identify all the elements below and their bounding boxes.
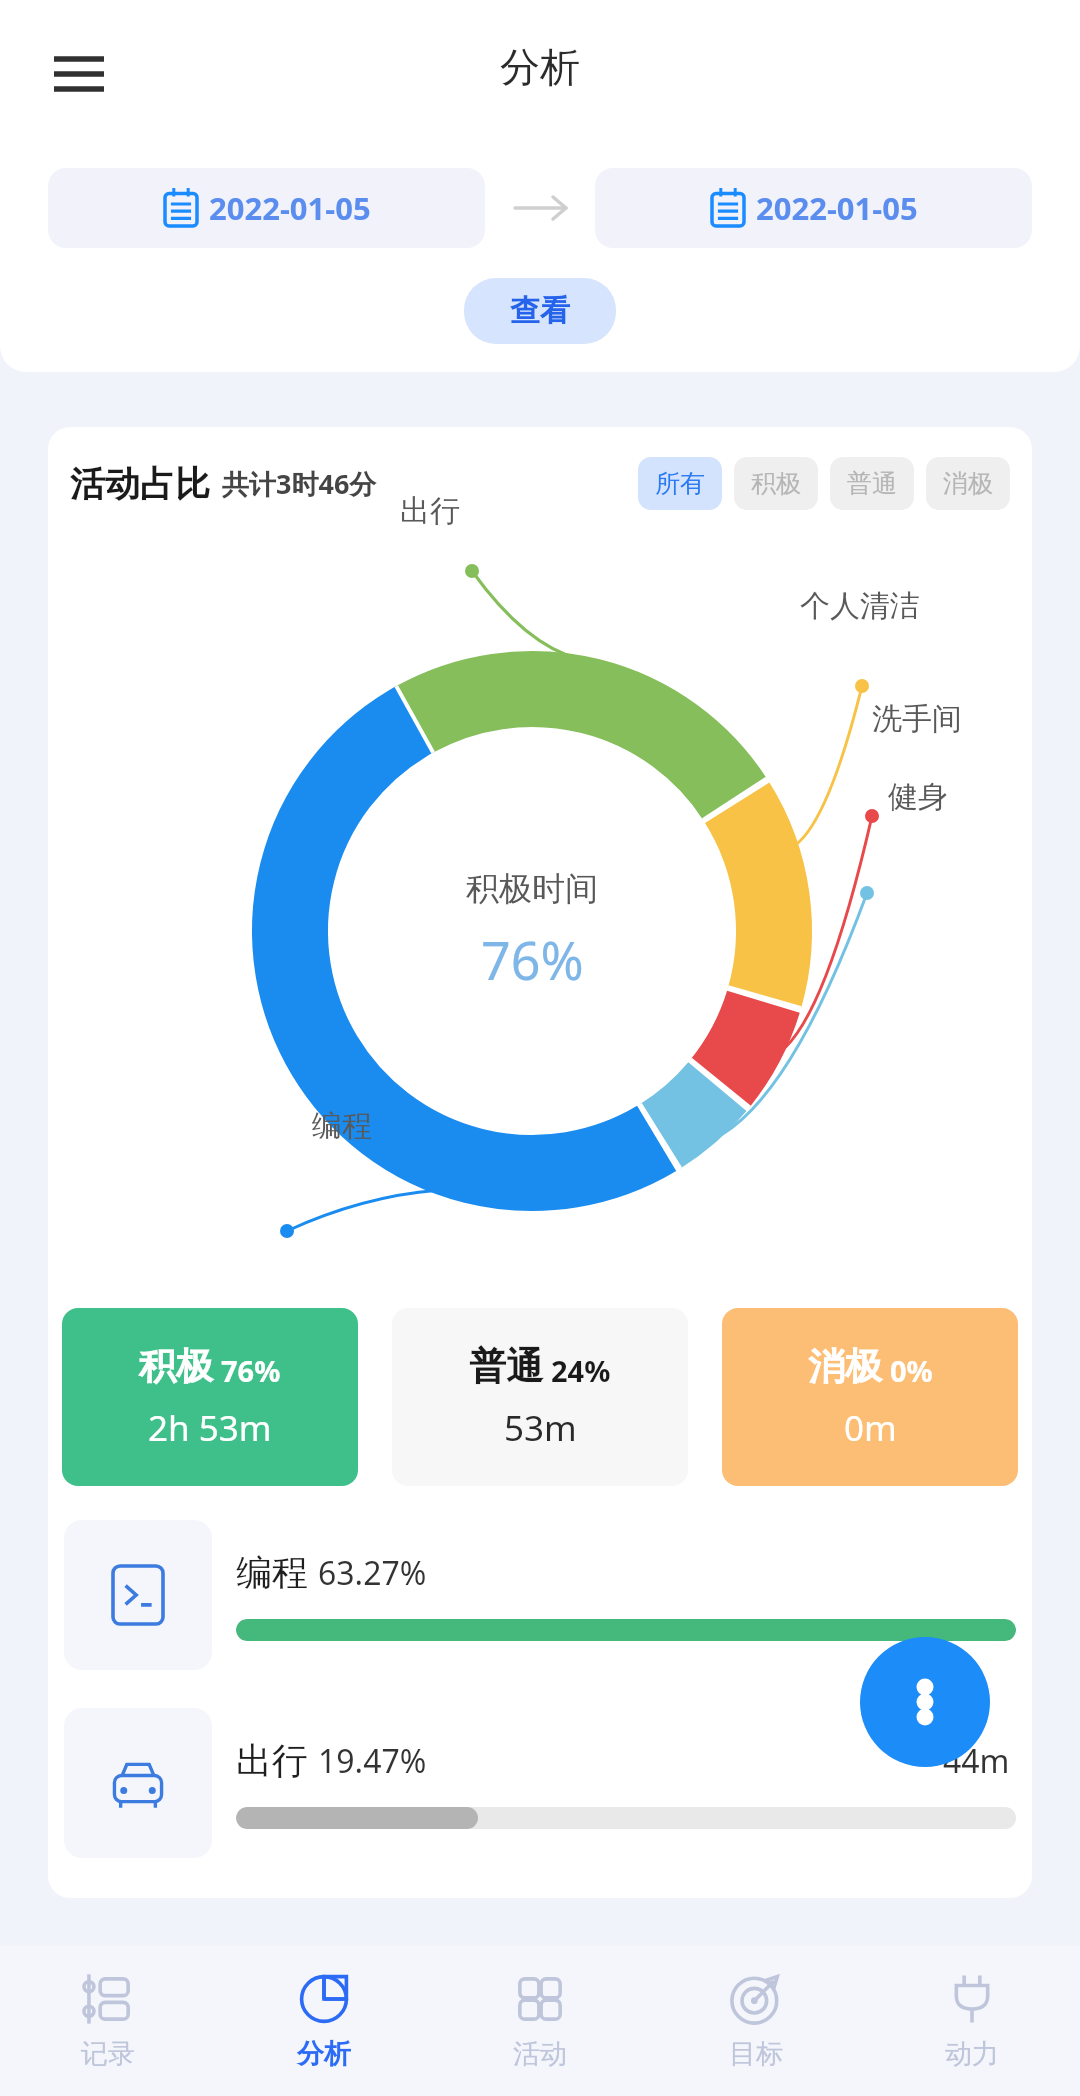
staticText: 出行	[400, 492, 460, 530]
staticText: 动力	[945, 2037, 999, 2071]
button[interactable]: 普通	[830, 457, 914, 510]
button[interactable]: More options	[860, 1637, 990, 1767]
button[interactable]: Menu	[40, 36, 118, 114]
button[interactable]: 目标	[648, 1946, 864, 2096]
staticText: 活动占比	[70, 462, 210, 506]
staticText: 查看	[510, 292, 570, 330]
staticText: 76%	[481, 924, 584, 995]
staticText: 记录	[81, 2037, 135, 2071]
staticText: 0m	[844, 1404, 897, 1452]
staticText: 洗手间	[872, 700, 962, 738]
button[interactable]: 积极	[734, 457, 818, 510]
button[interactable]: 分析	[216, 1946, 432, 2096]
staticText: 积极时间	[466, 868, 598, 910]
button[interactable]: 积极	[62, 1308, 358, 1486]
button[interactable]: 活动	[432, 1946, 648, 2096]
staticText: 0%	[890, 1351, 933, 1390]
staticText: 76%	[221, 1351, 281, 1390]
button[interactable]: 记录	[0, 1946, 216, 2096]
staticText: 消极	[808, 1343, 882, 1390]
staticText: 所有	[655, 468, 705, 499]
staticText: 健身	[888, 778, 948, 816]
button[interactable]: 消极	[926, 457, 1010, 510]
staticText: 分析	[500, 42, 580, 92]
button[interactable]: 动力	[864, 1946, 1080, 2096]
button[interactable]: 消极	[722, 1308, 1018, 1486]
staticText: 个人清洁	[800, 587, 920, 625]
button[interactable]: 2022-01-05	[595, 168, 1032, 248]
staticText: 19.47%	[318, 1739, 427, 1783]
staticText: 目标	[729, 2037, 783, 2071]
button[interactable]: 所有	[638, 457, 722, 510]
button[interactable]: 查看	[464, 278, 616, 344]
staticText: 普通	[847, 468, 897, 499]
button[interactable]: 编程	[64, 1520, 1016, 1670]
button[interactable]: 普通	[392, 1308, 688, 1486]
staticText: 63.27%	[318, 1551, 427, 1595]
staticText: 44m	[943, 1739, 1010, 1783]
button[interactable]: 出行	[64, 1708, 1016, 1858]
staticText: 共计3时46分	[222, 465, 377, 502]
button[interactable]: 2022-01-05	[48, 168, 485, 248]
staticText: 编程	[236, 1550, 308, 1595]
staticText: 编程	[312, 1107, 372, 1145]
staticText: 2022-01-05	[756, 187, 918, 229]
staticText: 24%	[551, 1351, 611, 1390]
staticText: 53m	[504, 1404, 577, 1452]
staticText: 普通	[469, 1343, 543, 1390]
staticText: 分析	[297, 2037, 351, 2071]
staticText: 2022-01-05	[209, 187, 371, 229]
staticText: 积极	[139, 1343, 213, 1390]
staticText: 消极	[943, 468, 993, 499]
staticText: 出行	[236, 1738, 308, 1783]
staticText: 2h 53m	[148, 1404, 272, 1452]
staticText: 活动	[513, 2037, 567, 2071]
staticText: 积极	[751, 468, 801, 499]
